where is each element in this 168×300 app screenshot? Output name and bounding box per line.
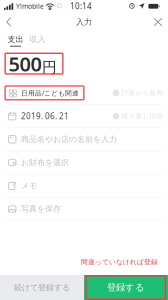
button[interactable]: 日用品/こども関連 [4, 85, 84, 100]
button[interactable]: 商品名やお店の名前を入力 [4, 128, 163, 151]
button[interactable]: Close [148, 14, 168, 29]
button[interactable]: 2019. 06. 21 [4, 109, 84, 124]
staticText: 10:14 [70, 1, 92, 11]
button[interactable]: 繰り返し項目 [113, 109, 163, 123]
button[interactable]: 支出 [7, 34, 23, 47]
button[interactable]: 500 [4, 53, 63, 75]
button[interactable]: 計算から除外 [113, 86, 163, 100]
button[interactable]: メモ [4, 174, 163, 197]
staticText: Y!mobile [16, 2, 44, 11]
staticText: 登録する [107, 282, 145, 293]
staticText: 支出 [7, 34, 23, 44]
staticText: メモ [21, 181, 37, 191]
button[interactable]: 収入 [29, 34, 45, 47]
staticText: 繰り返し項目 [121, 112, 163, 120]
staticText: 2019. 06. 21 [21, 111, 69, 121]
staticText: 日用品/こども関連 [21, 88, 79, 97]
staticText: 計算から除外 [121, 89, 163, 97]
staticText: 間違っていなければ登録 [81, 258, 158, 266]
button[interactable]: 続けて登録する [0, 275, 84, 300]
staticText: 収入 [29, 34, 45, 44]
button[interactable]: Back [0, 14, 18, 30]
staticText: 商品名やお店の名前を入力 [21, 134, 117, 144]
staticText: 入力 [76, 17, 92, 27]
staticText: お財布を選択 [21, 158, 69, 167]
staticText: 続けて登録する [14, 283, 70, 292]
staticText: 写真を保存 [21, 204, 61, 214]
staticText: 円 [42, 58, 57, 76]
button[interactable]: お財布を選択 [4, 151, 163, 174]
staticText: 500 [8, 50, 41, 77]
button[interactable]: 写真を保存 [4, 198, 163, 220]
button[interactable]: 登録する [84, 275, 168, 300]
